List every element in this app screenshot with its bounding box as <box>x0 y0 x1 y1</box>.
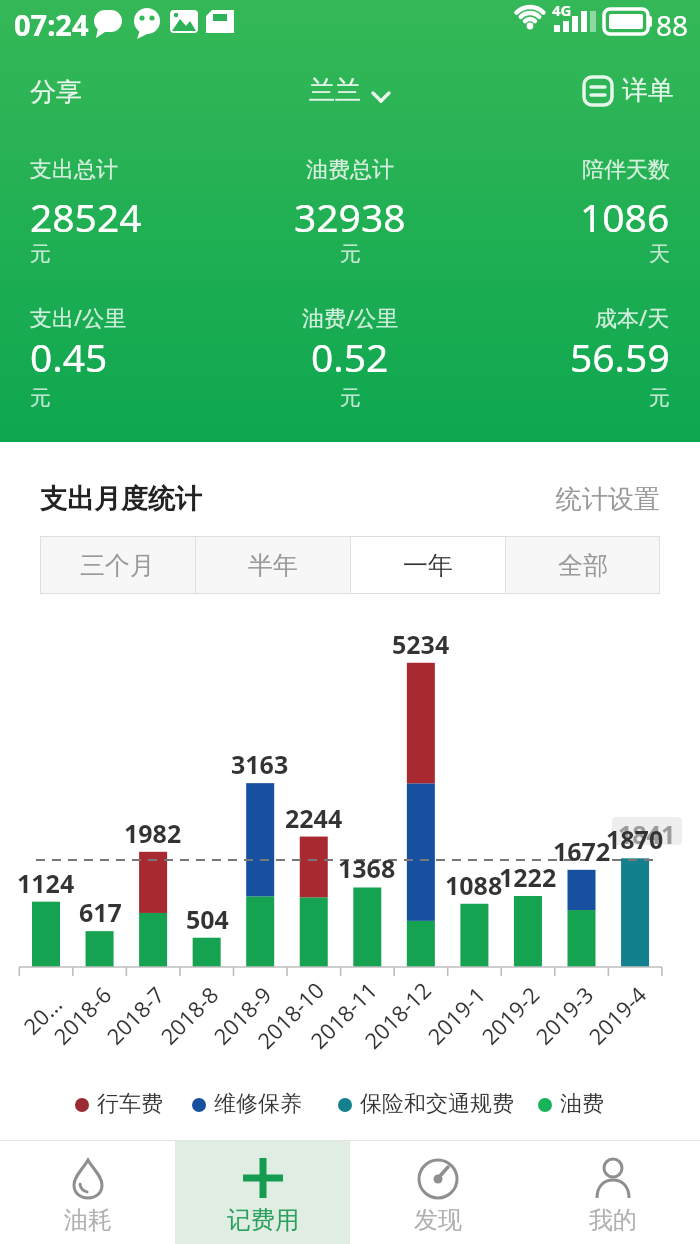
button[interactable]: 全部 <box>506 536 660 594</box>
staticText: 兰兰 <box>309 74 361 107</box>
staticText: 88 <box>656 6 689 44</box>
staticText: 1088 <box>445 868 503 902</box>
staticText: 全部 <box>558 550 608 581</box>
staticText: 元 <box>30 385 51 411</box>
staticText: 2018-10 <box>250 975 329 1053</box>
staticText: 3163 <box>231 747 289 781</box>
staticText: 20... <box>16 989 67 1039</box>
staticText: 支出总计 <box>30 156 118 184</box>
staticText: 32938 <box>294 190 406 243</box>
button[interactable]: 分享 <box>30 76 82 109</box>
staticText: 2018-8 <box>153 979 223 1049</box>
staticText: 2019-4 <box>581 979 651 1049</box>
staticText: 0.52 <box>311 330 389 383</box>
staticText: 发现 <box>414 1205 462 1235</box>
button[interactable]: 记费用 <box>175 1141 350 1244</box>
staticText: 1841 <box>618 817 676 845</box>
staticText: 1086 <box>580 190 670 243</box>
staticText: 1870 <box>606 822 664 856</box>
staticText: 天 <box>649 241 670 267</box>
staticText: 元 <box>30 241 51 267</box>
staticText: 成本/天 <box>595 302 670 332</box>
staticText: 支出月度统计 <box>40 482 202 516</box>
button[interactable]: 半年 <box>196 536 350 594</box>
staticText: 2018-6 <box>46 979 116 1049</box>
staticText: 油费/公里 <box>302 302 399 332</box>
button[interactable]: 详单 <box>582 74 674 107</box>
staticText: 元 <box>340 241 361 267</box>
button[interactable]: 兰兰 <box>309 74 391 107</box>
staticText: 记费用 <box>227 1205 299 1235</box>
staticText: 详单 <box>622 74 674 107</box>
staticText: 56.59 <box>570 330 670 383</box>
staticText: 0.45 <box>30 330 108 383</box>
staticText: 2018-7 <box>99 979 169 1049</box>
staticText: 1368 <box>338 851 396 885</box>
staticText: 28524 <box>30 190 142 243</box>
staticText: 元 <box>340 385 361 411</box>
button[interactable]: 油耗 <box>0 1141 175 1244</box>
button[interactable]: 三个月 <box>40 536 195 594</box>
staticText: 我的 <box>589 1205 637 1235</box>
staticText: 2018-12 <box>357 975 436 1053</box>
staticText: 油费 <box>560 1090 604 1118</box>
staticText: 2018-9 <box>206 979 276 1049</box>
staticText: 维修保养 <box>214 1090 302 1118</box>
staticText: 1124 <box>17 866 75 900</box>
staticText: 2019-1 <box>420 979 490 1049</box>
staticText: 1672 <box>553 834 611 868</box>
staticText: 4G <box>552 0 572 20</box>
staticText: 07:24 <box>14 5 89 44</box>
staticText: 1222 <box>499 860 557 894</box>
staticText: 2018-11 <box>303 975 382 1053</box>
staticText: 5234 <box>392 627 450 661</box>
staticText: 半年 <box>248 550 298 581</box>
staticText: 元 <box>649 385 670 411</box>
staticText: 617 <box>79 895 122 929</box>
staticText: 504 <box>186 902 229 936</box>
staticText: 2244 <box>285 801 343 835</box>
button[interactable]: 一年 <box>351 536 505 594</box>
button[interactable]: 发现 <box>350 1141 525 1244</box>
staticText: 油耗 <box>64 1205 112 1235</box>
staticText: 支出/公里 <box>30 302 127 332</box>
staticText: 2019-2 <box>474 979 544 1049</box>
staticText: 陪伴天数 <box>582 156 670 184</box>
staticText: 三个月 <box>80 550 155 581</box>
staticText: 油费总计 <box>306 156 394 184</box>
staticText: 一年 <box>403 550 453 581</box>
staticText: 1982 <box>124 816 182 850</box>
button[interactable]: 我的 <box>525 1141 700 1244</box>
staticText: 2019-3 <box>528 979 598 1049</box>
staticText: 保险和交通规费 <box>360 1090 514 1118</box>
button[interactable]: 统计设置 <box>556 483 660 516</box>
staticText: 行车费 <box>97 1090 163 1118</box>
